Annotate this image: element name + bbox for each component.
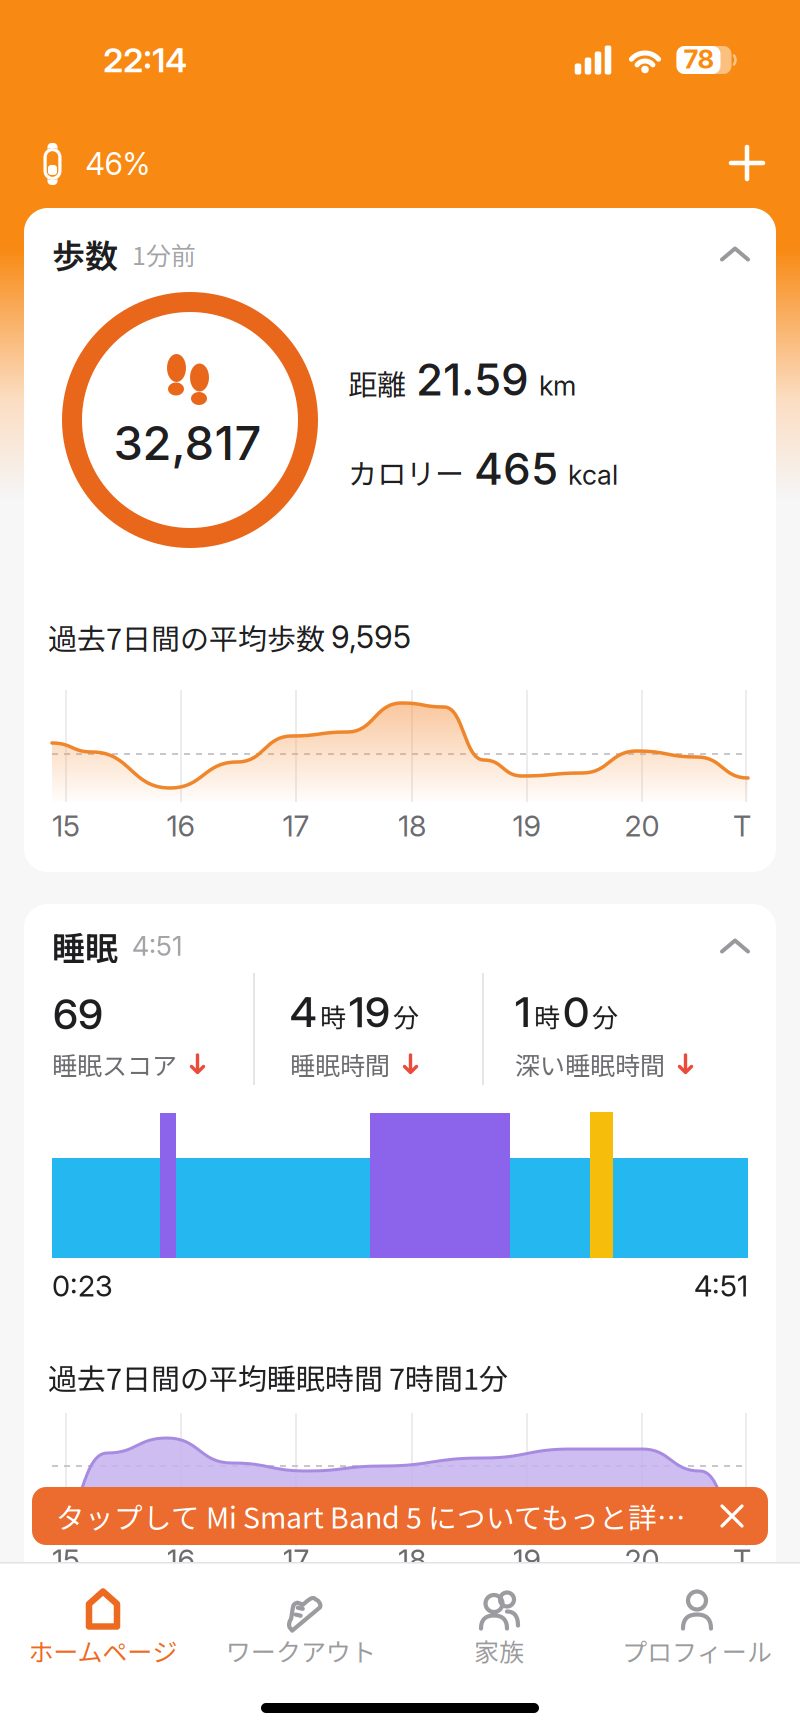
staticText: 16 — [166, 1542, 195, 1578]
staticText: 19 — [512, 1542, 541, 1578]
staticText: 過去7日間の平均歩数 — [48, 616, 331, 658]
staticText: 18 — [398, 1542, 426, 1578]
staticText: 17 — [282, 808, 309, 844]
staticText: 睡眠時間 — [290, 1046, 390, 1082]
staticText: 465 — [474, 442, 558, 495]
staticText: 15 — [52, 808, 80, 844]
staticText: 睡眠 — [52, 922, 118, 970]
staticText: 0:23 — [52, 1268, 113, 1304]
staticText: 4:51 — [694, 1268, 748, 1304]
staticText: 78 — [683, 43, 714, 75]
staticText: ワークアウト — [226, 1632, 376, 1669]
staticText: 歩数 — [52, 230, 118, 278]
staticText: 46% — [85, 145, 150, 182]
staticText: 睡眠スコア — [52, 1046, 177, 1082]
button[interactable]: ホームページ — [4, 1583, 202, 1669]
staticText: km — [539, 369, 576, 402]
staticText: 19 — [349, 987, 390, 1037]
staticText: 7時間1分 — [389, 1356, 508, 1398]
staticText: 18 — [398, 808, 426, 844]
button[interactable]: 家族 — [400, 1583, 598, 1669]
staticText: 家族 — [474, 1632, 524, 1669]
staticText: 時 — [534, 997, 560, 1035]
staticText: 16 — [166, 808, 195, 844]
staticText: 深い睡眠時間 — [515, 1046, 665, 1082]
staticText: 20 — [624, 1542, 659, 1578]
staticText: 15 — [52, 1542, 80, 1578]
staticText: 4:51 — [132, 930, 183, 962]
staticText: 1 — [515, 987, 531, 1037]
staticText: 21.59 — [416, 353, 529, 406]
staticText: 1分前 — [132, 236, 196, 272]
staticText: 分 — [592, 997, 618, 1035]
staticText: 距離 — [348, 362, 406, 404]
staticText: T — [733, 1542, 751, 1578]
staticText: 20 — [624, 808, 659, 844]
button[interactable]: Steps 32,817 — [62, 292, 318, 548]
button[interactable]: Learn more about Mi Smart Band 5 — [32, 1487, 768, 1545]
staticText: kcal — [568, 458, 618, 491]
button[interactable]: Close — [722, 1506, 742, 1526]
staticText: タップして Mi Smart Band 5 についてもっと詳し… — [56, 1495, 714, 1537]
staticText: 4 — [290, 987, 317, 1037]
button[interactable]: Add — [731, 147, 763, 179]
staticText: 22:14 — [103, 39, 187, 80]
button[interactable]: 睡眠 — [24, 924, 776, 968]
staticText: 19 — [512, 808, 541, 844]
staticText: ホームページ — [28, 1632, 177, 1669]
button[interactable]: プロフィール — [598, 1583, 796, 1669]
staticText: 69 — [53, 989, 103, 1039]
staticText: 0 — [563, 987, 589, 1037]
button[interactable]: Band battery 46% — [41, 143, 150, 185]
staticText: 17 — [282, 1542, 309, 1578]
staticText: 32,817 — [113, 415, 261, 471]
staticText: 9,595 — [331, 618, 411, 656]
staticText: プロフィール — [622, 1632, 772, 1669]
button[interactable]: 歩数 — [24, 232, 776, 276]
staticText: T — [733, 808, 751, 844]
staticText: 時 — [320, 997, 346, 1035]
button[interactable]: ワークアウト — [202, 1583, 400, 1669]
staticText: 分 — [393, 997, 419, 1035]
staticText: カロリー — [348, 451, 464, 493]
staticText: 過去7日間の平均睡眠時間 — [48, 1356, 389, 1398]
